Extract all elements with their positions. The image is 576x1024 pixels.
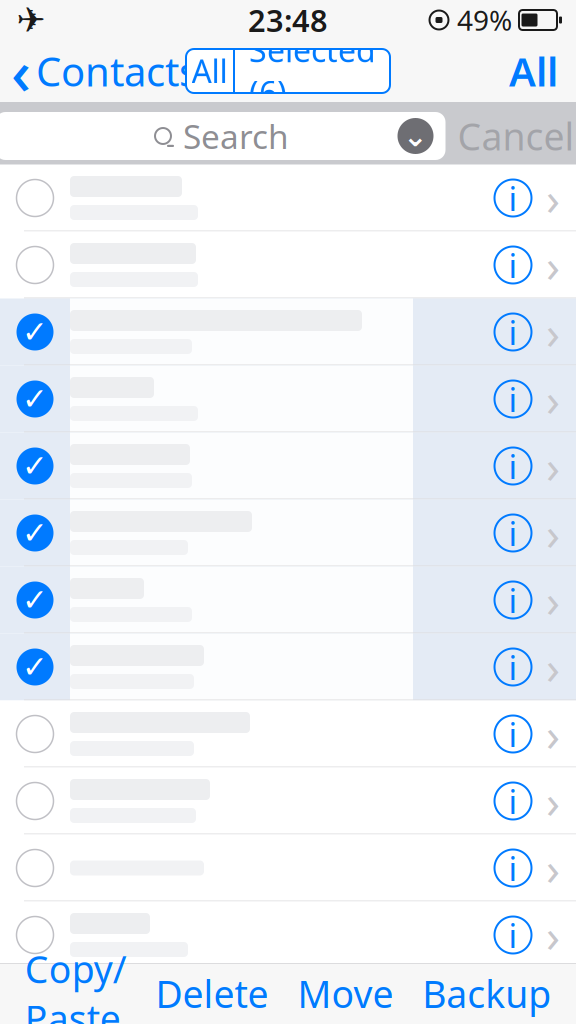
staticText: ✓ [22, 382, 48, 416]
staticText: i [508, 176, 517, 220]
staticText: Copy/Paste [25, 944, 127, 1024]
button[interactable]: Contact info [486, 169, 540, 227]
staticText: Move [297, 969, 393, 1018]
button[interactable]: i [0, 164, 576, 231]
staticText: › [546, 704, 560, 764]
button[interactable]: Contact info [486, 906, 540, 964]
staticText: i [508, 377, 517, 421]
staticText: Search [183, 114, 289, 158]
button[interactable]: i [0, 231, 576, 298]
button[interactable]: Contact info [486, 772, 540, 830]
button[interactable]: Contact info [486, 638, 540, 696]
staticText: ⌄ [403, 119, 428, 153]
staticText: › [546, 302, 560, 362]
button[interactable]: Backup [418, 954, 555, 1024]
staticText: › [546, 168, 560, 228]
button[interactable]: Contact info [486, 504, 540, 562]
staticText: › [546, 838, 560, 898]
button[interactable]: Move [293, 954, 397, 1024]
staticText: ✈ [16, 0, 45, 40]
staticText: › [546, 369, 560, 429]
staticText: Backup [422, 969, 551, 1018]
button[interactable]: Selected (6) [235, 49, 390, 93]
button[interactable]: i [0, 901, 576, 968]
button[interactable]: Cancel [445, 99, 576, 173]
staticText: i [508, 645, 517, 689]
button[interactable]: All [491, 36, 576, 105]
staticText: 49% [457, 1, 512, 39]
staticText: i [508, 779, 517, 823]
button[interactable]: Contact info [486, 705, 540, 763]
button[interactable]: Contact info [486, 370, 540, 428]
staticText: i [508, 511, 517, 555]
button[interactable]: ✓ [0, 633, 576, 700]
button[interactable]: Copy/Paste [21, 929, 131, 1024]
button[interactable]: ‹ [0, 36, 208, 105]
staticText: Cancel [457, 111, 574, 161]
staticText: i [508, 243, 517, 287]
button[interactable]: i [0, 834, 576, 901]
staticText: ✓ [22, 449, 48, 483]
staticText: i [508, 712, 517, 756]
staticText: i [508, 444, 517, 488]
button[interactable]: Contact info [486, 571, 540, 629]
staticText: i [508, 310, 517, 354]
button[interactable]: Contact info [486, 839, 540, 897]
button[interactable]: Search scope [393, 114, 437, 158]
staticText: › [546, 436, 560, 496]
staticText: ✓ [22, 315, 48, 349]
staticText: › [546, 235, 560, 295]
button[interactable]: ✓ [0, 365, 576, 432]
staticText: i [508, 913, 517, 957]
staticText: i [508, 846, 517, 890]
button[interactable]: ✓ [0, 432, 576, 499]
staticText: › [546, 570, 560, 630]
button[interactable]: i [0, 700, 576, 767]
staticText: › [546, 771, 560, 831]
staticText: › [546, 503, 560, 563]
staticText: Delete [156, 969, 269, 1018]
staticText: 23:48 [248, 0, 328, 40]
staticText: Selected (6) [249, 28, 376, 113]
button[interactable]: Delete [152, 954, 273, 1024]
button[interactable]: ✓ [0, 499, 576, 566]
staticText: i [508, 578, 517, 622]
staticText: Contacts [36, 44, 198, 97]
staticText: ✓ [22, 583, 48, 617]
button[interactable]: i [0, 767, 576, 834]
button[interactable]: Contact info [486, 303, 540, 361]
staticText: ✓ [22, 650, 48, 684]
staticText: ‹ [11, 30, 31, 112]
staticText: › [546, 905, 560, 965]
button[interactable]: ✓ [0, 298, 576, 365]
button[interactable]: Contact info [486, 437, 540, 495]
staticText: ✓ [22, 516, 48, 550]
staticText: › [546, 637, 560, 697]
staticText: All [191, 50, 227, 92]
button[interactable]: All [186, 49, 233, 93]
staticText: All [509, 44, 558, 97]
button[interactable]: ✓ [0, 566, 576, 633]
button[interactable]: Contact info [486, 236, 540, 294]
